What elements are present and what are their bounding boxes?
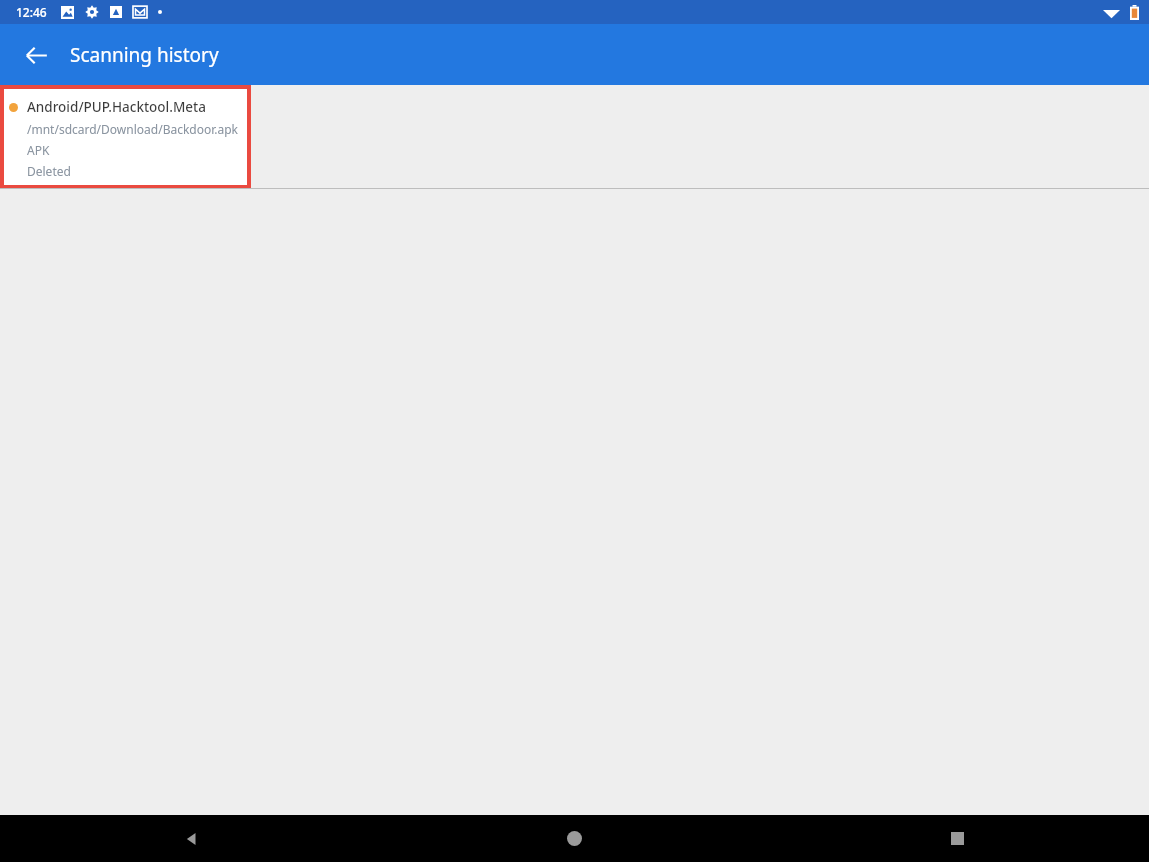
button[interactable]: Back [0, 815, 383, 862]
button[interactable]: Android/PUP.Hacktool.Meta [0, 85, 251, 189]
staticText: /mnt/sdcard/Download/Backdoor.apk [27, 121, 239, 137]
button[interactable]: Recent apps [766, 815, 1149, 862]
staticText: APK [27, 142, 50, 158]
button[interactable]: Back [12, 31, 60, 79]
button[interactable]: Home [383, 815, 766, 862]
staticText: Android/PUP.Hacktool.Meta [27, 98, 206, 116]
staticText: Deleted [27, 163, 71, 179]
staticText: 12:46 [16, 4, 47, 20]
staticText: Scanning history [70, 42, 219, 68]
